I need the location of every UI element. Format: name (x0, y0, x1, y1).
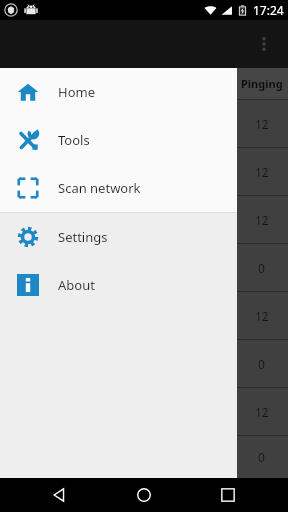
staticText: 12 (255, 116, 269, 132)
button[interactable]: Home (0, 68, 237, 116)
staticText: 12 (255, 164, 269, 180)
button[interactable]: Settings (0, 213, 237, 261)
staticText: 0 (258, 449, 265, 465)
button[interactable]: Home (120, 478, 168, 512)
button[interactable]: Scan network (0, 164, 237, 212)
button[interactable]: Tools (0, 116, 237, 164)
button[interactable]: Back (36, 478, 84, 512)
staticText: 0 (258, 260, 265, 276)
staticText: 0 (258, 356, 265, 372)
button[interactable]: Recent apps (204, 478, 252, 512)
staticText: Pinging (241, 76, 283, 91)
staticText: 12 (255, 308, 269, 324)
button[interactable]: About (0, 261, 237, 309)
staticText: About (58, 276, 95, 294)
staticText: 12 (255, 404, 269, 420)
staticText: 17:24 (253, 2, 284, 18)
staticText: 12 (255, 212, 269, 228)
staticText: Settings (58, 228, 108, 246)
staticText: Scan network (58, 179, 141, 197)
staticText: Tools (58, 131, 90, 149)
button[interactable]: More options (240, 20, 288, 68)
staticText: Home (58, 83, 95, 101)
